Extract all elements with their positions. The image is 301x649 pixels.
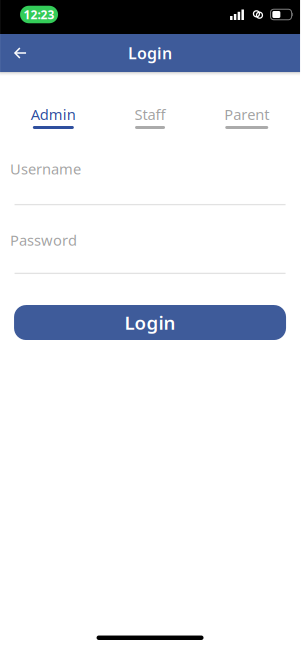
staticText: Login [125,310,176,335]
staticText: Admin [31,104,76,124]
button[interactable]: Admin [5,104,102,129]
button[interactable]: Username [0,159,300,205]
button[interactable]: Parent [198,104,295,129]
button[interactable]: Password [0,230,300,274]
button[interactable]: Staff [102,104,198,129]
staticText: Login [128,42,172,64]
staticText: Parent [224,104,269,124]
staticText: Username [10,159,81,178]
staticText: Password [10,230,77,250]
staticText: Staff [135,104,166,124]
button[interactable]: Login [14,305,286,340]
button[interactable]: Back [0,34,27,72]
staticText: 12:23 [24,6,55,22]
